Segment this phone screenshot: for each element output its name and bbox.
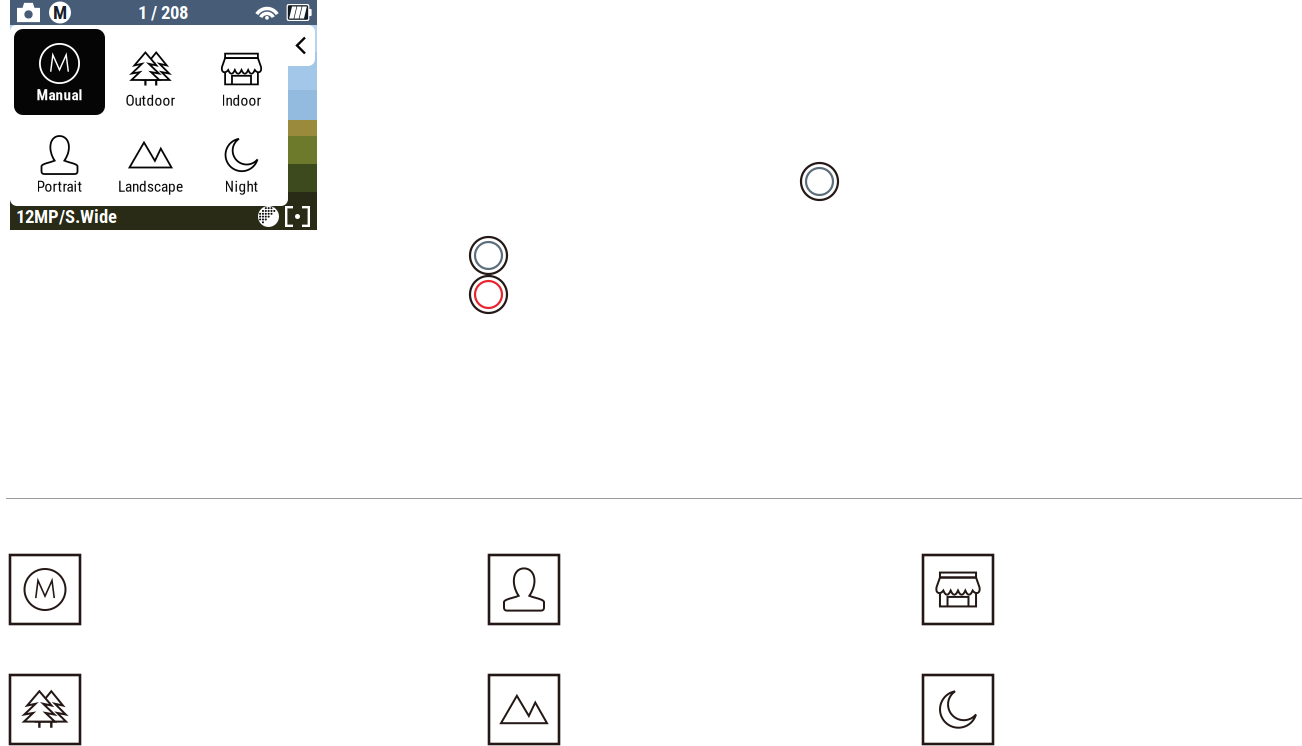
staticText: 12MP/S.Wide [16,206,117,227]
button[interactable]: Landscape [105,115,196,201]
button[interactable]: Back [287,25,315,66]
button[interactable]: Manual [14,29,105,115]
staticText: Night [224,177,258,195]
staticText: Outdoor [125,91,175,109]
button[interactable]: Outdoor [105,29,196,115]
staticText: Manual [36,86,82,104]
staticText: Portrait [36,177,82,195]
button[interactable]: Indoor [196,29,287,115]
staticText: M [53,2,67,23]
staticText: Landscape [118,177,183,195]
staticText: 1 / 208 [138,2,188,23]
button[interactable]: Night [196,115,287,201]
staticText: Indoor [221,91,261,109]
button[interactable]: Portrait [14,115,105,201]
